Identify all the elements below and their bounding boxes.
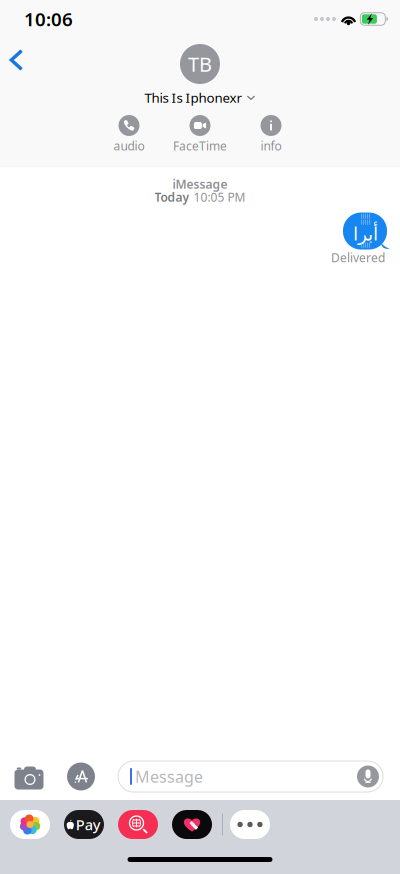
staticText: Pay (76, 815, 101, 834)
button[interactable]: Dictate (357, 765, 379, 787)
button[interactable]: Apple Pay (64, 810, 104, 839)
staticText: FaceTime (173, 138, 227, 154)
staticText: TB (188, 51, 212, 77)
staticText: ااااا (360, 219, 370, 226)
button[interactable]: audio (93, 115, 164, 154)
staticText: ااااا (360, 213, 370, 220)
staticText: Delivered (331, 249, 385, 265)
staticText: This Is Iphonexr (144, 89, 242, 106)
button[interactable]: App Store (67, 762, 95, 790)
staticText: ااااا (360, 242, 370, 249)
button[interactable]: Digital Touch (172, 810, 212, 839)
staticText: info (260, 138, 281, 154)
button[interactable]: FaceTime (164, 115, 235, 154)
staticText: 10:06 (24, 7, 73, 31)
button[interactable]: Back (0, 39, 35, 80)
staticText: Today (154, 189, 189, 205)
staticText: Message (135, 766, 203, 787)
button[interactable]: Images (118, 810, 158, 839)
staticText: audio (113, 138, 144, 154)
button[interactable]: More apps (230, 810, 270, 839)
staticText: أبرا (352, 223, 377, 245)
button[interactable]: Camera (14, 764, 44, 788)
button[interactable]: info (235, 115, 306, 154)
staticText: iMessage (172, 176, 227, 192)
staticText: 10:05 PM (193, 189, 245, 205)
button[interactable]: TB (144, 44, 255, 106)
button[interactable]: Photos (10, 810, 50, 839)
